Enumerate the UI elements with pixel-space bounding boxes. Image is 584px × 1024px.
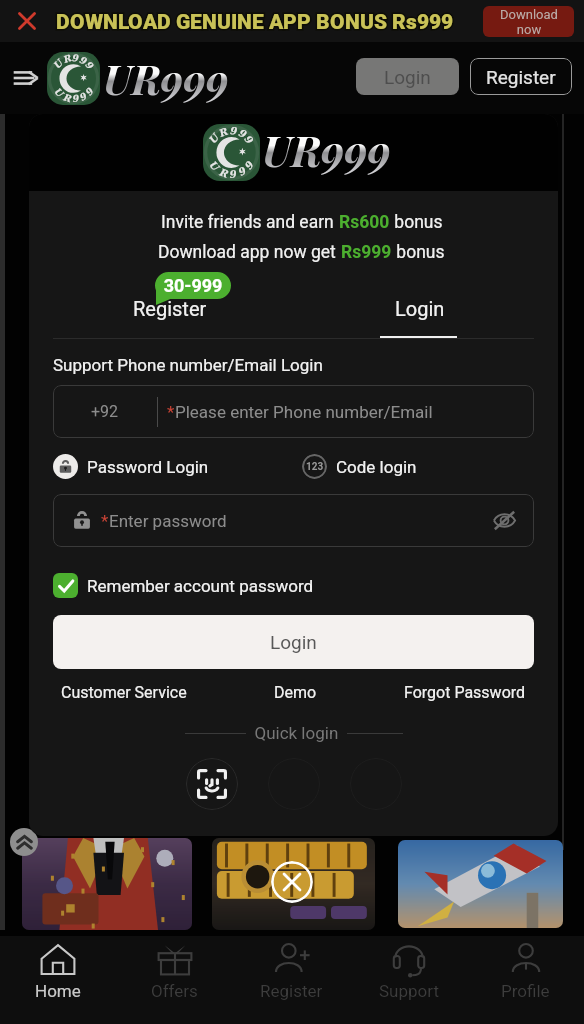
staticText: Offers — [151, 981, 198, 1001]
staticText: Download now — [500, 7, 558, 37]
button[interactable]: Profile — [467, 936, 584, 1024]
staticText: Home — [35, 981, 81, 1001]
staticText: +92 — [91, 402, 119, 421]
staticText: Register — [260, 981, 323, 1001]
button[interactable]: Face ID login — [186, 758, 238, 810]
staticText: Rs999 — [341, 242, 392, 263]
button[interactable]: Home — [0, 936, 116, 1024]
button[interactable]: Scroll to top — [10, 828, 38, 856]
staticText: Login — [270, 631, 317, 653]
staticText: UR999 — [262, 122, 391, 178]
staticText: Enter password — [109, 511, 227, 531]
staticText: Invite friends and earn — [161, 212, 339, 233]
staticText: UR999 — [103, 51, 229, 106]
button[interactable]: Customer Service — [61, 683, 187, 702]
staticText: Please enter Phone number/Email — [175, 402, 433, 422]
staticText: 123 — [306, 461, 324, 473]
button[interactable]: Login — [53, 615, 534, 669]
staticText: Login — [395, 297, 445, 320]
staticText: Code login — [336, 457, 417, 477]
button[interactable]: Open menu — [12, 64, 40, 92]
staticText: Login — [384, 66, 431, 88]
staticText: Support — [379, 981, 439, 1001]
button[interactable]: Register — [470, 58, 572, 95]
button[interactable]: Support — [350, 936, 467, 1024]
staticText: Remember account password — [87, 576, 314, 596]
staticText: Rs600 — [339, 212, 390, 233]
button[interactable]: Register — [233, 936, 350, 1024]
other: Toggle password visibility — [493, 509, 516, 532]
staticText: Register — [486, 66, 556, 88]
staticText: bonus — [390, 212, 443, 233]
button[interactable]: Login — [293, 263, 534, 339]
button[interactable]: Dismiss banner — [14, 8, 40, 34]
button[interactable]: Forgot Password — [404, 683, 526, 702]
staticText: Quick login — [246, 723, 347, 743]
button[interactable]: Password Login — [53, 454, 209, 479]
staticText: Download app now get — [158, 242, 341, 263]
button[interactable]: Register — [53, 263, 293, 339]
button[interactable]: Game 1 — [22, 838, 192, 930]
staticText: * — [101, 511, 109, 531]
staticText: Profile — [501, 981, 550, 1001]
staticText: Register — [133, 297, 207, 320]
button[interactable]: Offers — [116, 936, 233, 1024]
button[interactable]: Demo — [274, 683, 317, 702]
staticText: Password Login — [87, 457, 209, 477]
button[interactable]: 123 — [302, 454, 417, 479]
button[interactable]: Game 2 — [212, 838, 375, 930]
staticText: 30-999 — [155, 275, 231, 299]
staticText: * — [167, 402, 175, 422]
button[interactable]: Remember account password — [53, 573, 314, 598]
button[interactable]: Game 3 — [398, 840, 563, 928]
staticText: bonus — [392, 242, 445, 263]
button[interactable]: Login — [356, 58, 459, 95]
button[interactable]: Download now — [483, 6, 574, 37]
staticText: Support Phone number/Email Login — [53, 355, 323, 375]
button[interactable]: Close login dialog — [271, 861, 313, 903]
